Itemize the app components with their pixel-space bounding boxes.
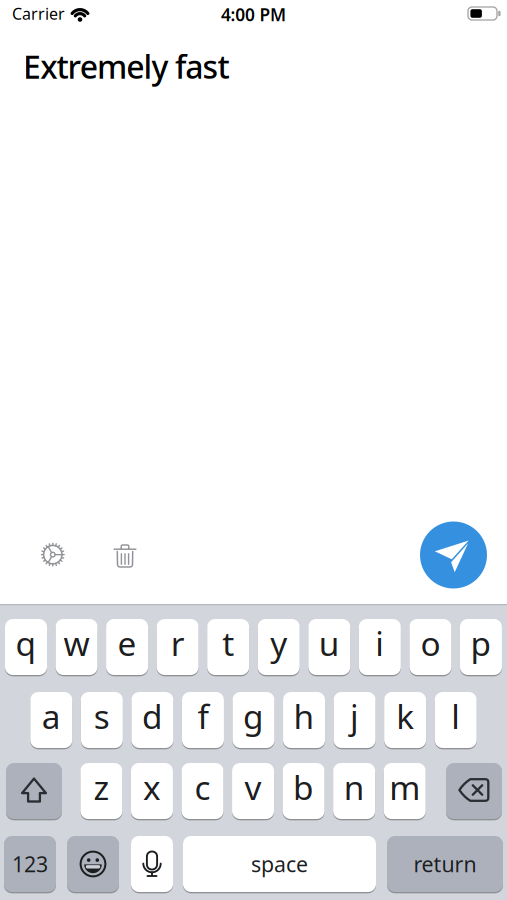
button[interactable]: Shift	[6, 762, 62, 820]
staticText: r	[171, 621, 185, 665]
staticText: e	[118, 621, 137, 665]
button[interactable]: z	[80, 762, 122, 820]
staticText: h	[294, 694, 315, 738]
staticText: f	[197, 694, 208, 738]
button[interactable]: b	[283, 762, 325, 820]
button[interactable]: c	[181, 762, 223, 820]
button[interactable]: p	[460, 618, 502, 676]
button[interactable]: n	[333, 762, 375, 820]
button[interactable]: g	[232, 691, 274, 749]
staticText: space	[251, 850, 308, 878]
button[interactable]: Delete	[113, 543, 137, 569]
staticText: s	[94, 694, 110, 738]
button[interactable]: s	[81, 691, 123, 749]
button[interactable]: t	[207, 618, 249, 676]
staticText: v	[244, 765, 261, 809]
button[interactable]: Delete	[446, 762, 502, 820]
staticText: 4:00 PM	[221, 3, 286, 26]
button[interactable]: Settings	[38, 540, 68, 570]
button[interactable]: m	[384, 762, 426, 820]
button[interactable]: f	[182, 691, 224, 749]
button[interactable]: h	[283, 691, 325, 749]
staticText: n	[344, 765, 365, 809]
staticText: z	[93, 765, 109, 809]
button[interactable]: o	[409, 618, 451, 676]
staticText: 123	[12, 850, 48, 878]
staticText: o	[420, 621, 440, 665]
staticText: k	[396, 694, 414, 738]
staticText: d	[142, 694, 163, 738]
button[interactable]: x	[131, 762, 173, 820]
button[interactable]: space	[183, 835, 376, 893]
staticText: c	[194, 765, 210, 809]
staticText: b	[293, 765, 314, 809]
staticText: m	[389, 765, 420, 809]
button[interactable]: Numbers	[4, 835, 56, 893]
staticText: j	[350, 694, 359, 738]
staticText: p	[470, 621, 491, 665]
button[interactable]: Send	[419, 521, 487, 589]
staticText: g	[243, 694, 264, 738]
button[interactable]: q	[5, 618, 47, 676]
button[interactable]: u	[308, 618, 350, 676]
button[interactable]: v	[232, 762, 274, 820]
button[interactable]: e	[106, 618, 148, 676]
staticText: w	[63, 621, 89, 665]
button[interactable]: j	[334, 691, 376, 749]
button[interactable]: r	[157, 618, 199, 676]
staticText: return	[413, 850, 476, 878]
button[interactable]: a	[30, 691, 72, 749]
staticText: l	[451, 694, 460, 738]
button[interactable]: k	[384, 691, 426, 749]
button[interactable]: y	[258, 618, 300, 676]
button[interactable]: w	[55, 618, 97, 676]
button[interactable]: i	[359, 618, 401, 676]
staticText: x	[143, 765, 161, 809]
staticText: Carrier	[12, 3, 65, 24]
button[interactable]: Emoji	[67, 835, 119, 893]
staticText: q	[15, 621, 36, 665]
staticText: u	[319, 621, 340, 665]
staticText: Extremely fast	[23, 45, 230, 87]
staticText: i	[375, 621, 384, 665]
staticText: y	[270, 621, 287, 665]
button[interactable]: l	[435, 691, 477, 749]
staticText: a	[42, 694, 61, 738]
button[interactable]: d	[131, 691, 173, 749]
button[interactable]: Dictate	[131, 835, 173, 893]
button[interactable]: return	[387, 835, 503, 893]
staticText: t	[222, 621, 234, 665]
